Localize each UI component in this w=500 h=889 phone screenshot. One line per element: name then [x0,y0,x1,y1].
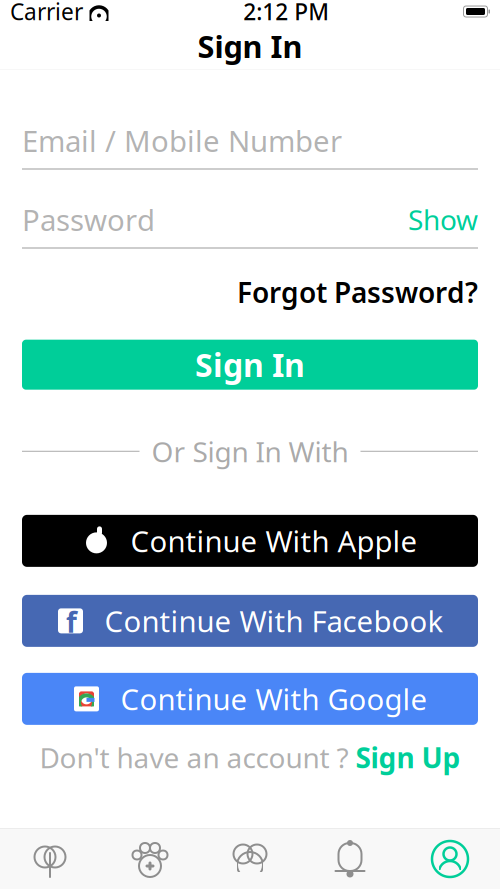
staticText: Continue With Facebook [104,601,443,640]
staticText: Sign Up [355,739,460,776]
staticText: Sign In [197,26,302,66]
staticText: Carrier [10,0,83,26]
staticText: Show [408,201,478,238]
staticText: Password [22,200,155,239]
staticText: 2:12 PM [243,0,329,26]
button[interactable]: Continue With Apple [22,515,478,567]
button[interactable]: Sign In [22,340,478,390]
staticText: f [66,603,77,640]
button[interactable]: Continue With Google [22,673,478,725]
button[interactable]: Notifications [300,829,400,889]
button[interactable]: Pet Care [100,829,200,889]
staticText: Don't have an account ? [39,739,355,776]
staticText: Email / Mobile Number [22,121,342,160]
staticText: Or Sign In With [151,433,348,470]
staticText: Continue With Google [120,679,427,718]
button[interactable]: Forgot Password? [237,269,478,315]
staticText: Forgot Password? [237,273,478,311]
button[interactable]: f [22,595,478,647]
button[interactable]: Favorites [200,829,300,889]
button[interactable]: Plants [0,829,100,889]
button[interactable]: Don't have an account ? [39,733,460,782]
button[interactable]: Show [408,201,478,238]
button[interactable]: Profile [400,829,500,889]
staticText: Sign In [195,343,305,386]
staticText: Continue With Apple [130,521,417,560]
